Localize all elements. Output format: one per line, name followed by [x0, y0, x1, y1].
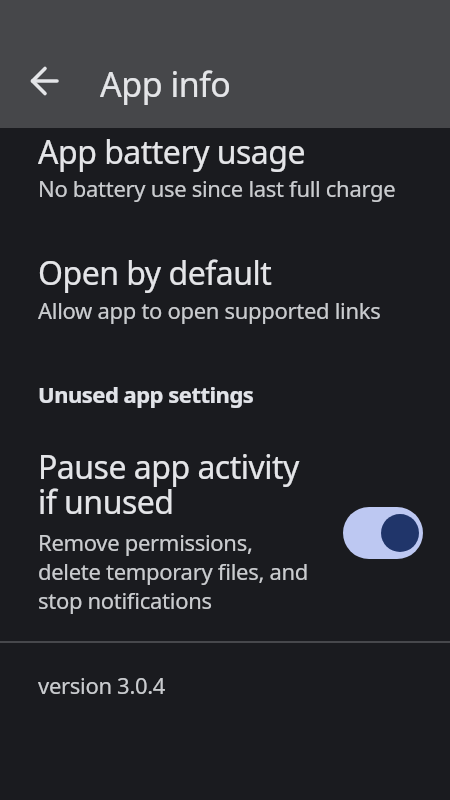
staticText: Open by default — [38, 251, 272, 295]
staticText: App battery usage — [38, 130, 306, 174]
staticText: App info — [100, 61, 231, 107]
staticText: Unused app settings — [38, 379, 254, 409]
staticText: No battery use since last full charge — [38, 173, 396, 203]
staticText: Allow app to open supported links — [38, 295, 381, 325]
staticText: version 3.0.4 — [38, 670, 166, 700]
staticText: Pause app activity if unused — [38, 445, 299, 524]
staticText: Remove permissions, delete temporary fil… — [38, 527, 309, 615]
